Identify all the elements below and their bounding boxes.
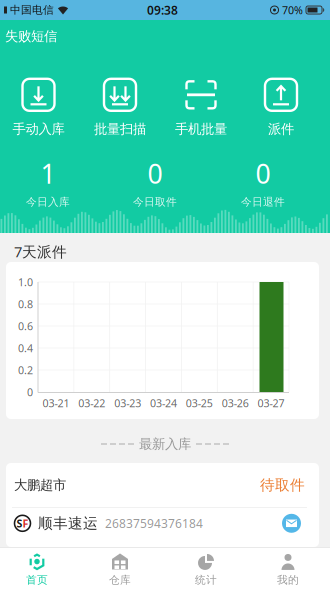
staticText: 0 xyxy=(27,385,33,399)
staticText: 1.0 xyxy=(18,275,33,289)
staticText: 今日退件 xyxy=(241,195,285,208)
staticText: 最新入库 xyxy=(139,436,191,452)
staticText: 大鹏超市 xyxy=(14,477,66,493)
button[interactable]: 统计 xyxy=(166,548,246,592)
staticText: 待取件 xyxy=(260,476,305,494)
button[interactable]: 派件 xyxy=(265,79,297,137)
staticText: 手动入库 xyxy=(12,121,64,137)
staticText: F xyxy=(22,516,28,530)
button[interactable]: 仓库 xyxy=(74,548,166,592)
staticText: 0.2 xyxy=(18,363,33,377)
staticText: 03-26 xyxy=(222,396,249,410)
button[interactable]: S xyxy=(6,508,319,539)
staticText: 0 xyxy=(255,156,270,191)
button[interactable]: 发送短信 xyxy=(282,514,301,533)
staticText: 失败短信 xyxy=(5,28,57,44)
button[interactable]: 大鹏超市 xyxy=(6,463,319,507)
staticText: 1 xyxy=(40,156,55,191)
staticText: 03-22 xyxy=(78,396,105,410)
button[interactable]: 手动入库 xyxy=(12,79,64,137)
button[interactable]: 手机批量 xyxy=(175,79,227,137)
staticText: 中国电信 xyxy=(10,3,54,16)
staticText: 03-27 xyxy=(258,396,285,410)
staticText: 仓库 xyxy=(109,573,131,586)
staticText: S xyxy=(16,516,22,530)
staticText: 26837594376184 xyxy=(105,515,203,531)
button[interactable]: 失败短信 xyxy=(0,20,57,44)
staticText: 批量扫描 xyxy=(94,121,146,137)
staticText: 09:38 xyxy=(147,2,178,18)
staticText: 首页 xyxy=(26,573,48,586)
staticText: 0.8 xyxy=(18,297,33,311)
staticText: 03-23 xyxy=(114,396,141,410)
staticText: 0 xyxy=(147,156,162,191)
staticText: 0.4 xyxy=(18,341,33,355)
staticText: 03-25 xyxy=(186,396,213,410)
staticText: 今日入库 xyxy=(26,195,70,208)
staticText: 手机批量 xyxy=(175,121,227,137)
staticText: 03-24 xyxy=(150,396,177,410)
button[interactable]: 批量扫描 xyxy=(94,79,146,137)
button[interactable]: 我的 xyxy=(246,548,330,592)
staticText: 派件 xyxy=(268,121,294,137)
staticText: 70% xyxy=(282,3,303,17)
staticText: 03-21 xyxy=(42,396,69,410)
button[interactable]: 首页 xyxy=(0,548,74,592)
staticText: 我的 xyxy=(277,573,299,586)
staticText: 7天派件 xyxy=(14,242,67,261)
staticText: 统计 xyxy=(195,573,217,586)
staticText: 今日取件 xyxy=(133,195,177,208)
staticText: 0.6 xyxy=(18,319,33,333)
staticText: 顺丰速运 xyxy=(38,514,98,532)
